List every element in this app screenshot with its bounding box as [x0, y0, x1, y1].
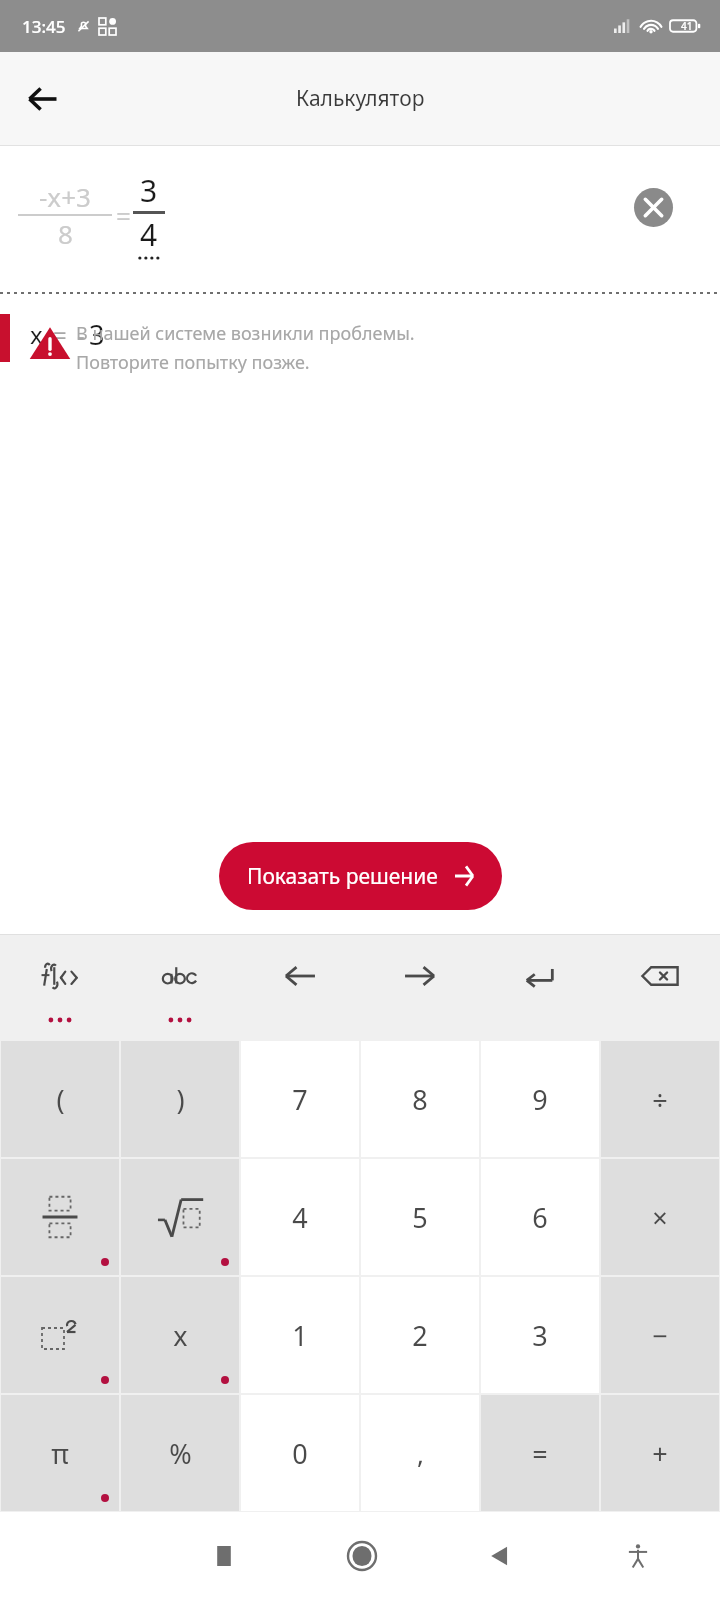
- button[interactable]: %: [121, 1395, 239, 1511]
- staticText: (: [56, 1081, 65, 1118]
- staticText: 2: [412, 1317, 428, 1354]
- staticText: 13:45: [22, 15, 66, 38]
- staticText: 3: [140, 170, 158, 211]
- button[interactable]: enter: [480, 935, 600, 1017]
- button[interactable]: ,: [361, 1395, 479, 1511]
- staticText: 9: [532, 1081, 548, 1118]
- staticText: 8: [412, 1081, 428, 1118]
- staticText: -: [77, 318, 85, 351]
- button[interactable]: 6: [481, 1159, 599, 1275]
- staticText: 5: [412, 1199, 428, 1236]
- button[interactable]: 0: [241, 1395, 359, 1511]
- button[interactable]: ): [121, 1041, 239, 1157]
- button[interactable]: ×: [601, 1159, 719, 1275]
- button[interactable]: π: [1, 1395, 119, 1511]
- button[interactable]: Recents: [196, 1528, 252, 1584]
- staticText: 8: [58, 216, 73, 251]
- button[interactable]: left: [240, 935, 360, 1017]
- button[interactable]: 8: [361, 1041, 479, 1157]
- button[interactable]: Показать решение: [219, 842, 502, 910]
- staticText: %: [169, 1435, 192, 1472]
- button[interactable]: right: [360, 935, 480, 1017]
- staticText: 7: [292, 1081, 308, 1118]
- button[interactable]: backspace: [600, 935, 720, 1017]
- button[interactable]: 3: [481, 1277, 599, 1393]
- staticText: π: [51, 1435, 69, 1472]
- button[interactable]: Fraction: [1, 1159, 119, 1275]
- button[interactable]: Home: [334, 1528, 390, 1584]
- button[interactable]: −: [601, 1277, 719, 1393]
- staticText: ÷: [652, 1081, 668, 1118]
- staticText: 41: [681, 19, 693, 33]
- button[interactable]: (: [1, 1041, 119, 1157]
- staticText: 4: [140, 214, 158, 255]
- staticText: 3: [532, 1317, 548, 1354]
- button[interactable]: x: [121, 1277, 239, 1393]
- staticText: =: [53, 318, 67, 351]
- staticText: −: [652, 1317, 668, 1354]
- button[interactable]: Accessibility: [610, 1528, 666, 1584]
- button[interactable]: Back: [12, 68, 74, 130]
- staticText: ×: [652, 1199, 668, 1236]
- button[interactable]: Power: [1, 1277, 119, 1393]
- staticText: -x+3: [39, 179, 91, 214]
- staticText: 0: [292, 1435, 308, 1472]
- staticText: 1: [292, 1317, 308, 1354]
- button[interactable]: Square root: [121, 1159, 239, 1275]
- button[interactable]: 4: [241, 1159, 359, 1275]
- staticText: Повторите попытку позже.: [76, 350, 310, 375]
- staticText: +: [652, 1435, 668, 1472]
- button[interactable]: 2: [361, 1277, 479, 1393]
- staticText: ,: [417, 1436, 424, 1471]
- staticText: =: [532, 1435, 548, 1472]
- button[interactable]: =: [481, 1395, 599, 1511]
- button[interactable]: Clear: [628, 182, 678, 232]
- button[interactable]: +: [601, 1395, 719, 1511]
- staticText: 6: [532, 1199, 548, 1236]
- staticText: 3: [89, 316, 105, 353]
- staticText: x: [30, 318, 43, 351]
- staticText: 4: [292, 1199, 308, 1236]
- staticText: x: [173, 1317, 188, 1354]
- staticText: Показать решение: [247, 862, 438, 891]
- staticText: В нашей системе возникли проблемы.: [76, 321, 415, 346]
- button[interactable]: 1: [241, 1277, 359, 1393]
- button[interactable]: abc: [120, 935, 240, 1017]
- button[interactable]: ÷: [601, 1041, 719, 1157]
- staticText: =: [116, 198, 131, 233]
- button[interactable]: fi<>: [0, 935, 120, 1017]
- button[interactable]: Back: [472, 1528, 528, 1584]
- button[interactable]: 5: [361, 1159, 479, 1275]
- button[interactable]: 7: [241, 1041, 359, 1157]
- staticText: Калькулятор: [296, 84, 425, 113]
- button[interactable]: 9: [481, 1041, 599, 1157]
- staticText: ): [176, 1081, 185, 1118]
